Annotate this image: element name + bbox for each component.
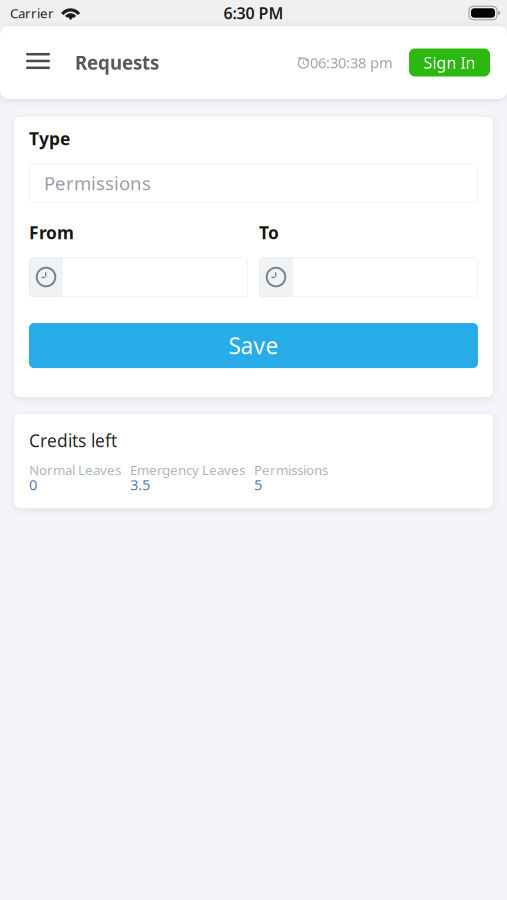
staticText: Sign In (423, 52, 475, 73)
staticText: 6:30 PM (223, 2, 283, 24)
staticText: Carrier (10, 4, 54, 22)
staticText: Credits left (29, 429, 117, 452)
staticText: From (29, 221, 74, 244)
staticText: Normal Leaves (29, 461, 121, 479)
staticText: Type (29, 127, 70, 150)
staticText: 3.5 (130, 475, 150, 494)
staticText: Permissions (44, 171, 151, 195)
staticText: Requests (75, 50, 159, 75)
staticText: 06:30:38 pm (310, 53, 393, 72)
button[interactable]: Menu (0, 35, 75, 90)
staticText: 5 (254, 475, 262, 494)
staticText: Save (228, 330, 278, 361)
staticText: Emergency Leaves (130, 461, 245, 479)
button[interactable]: Save (29, 323, 478, 368)
staticText: To (259, 221, 279, 244)
staticText: Permissions (254, 461, 328, 479)
button[interactable]: Sign In (409, 48, 490, 76)
staticText: 0 (29, 475, 37, 494)
